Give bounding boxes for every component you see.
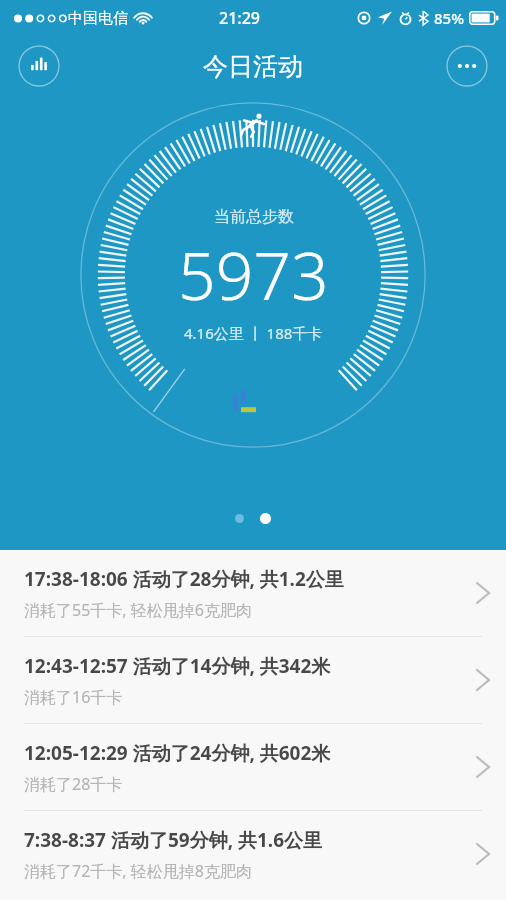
staticText: 12:43-12:57 活动了14分钟, 共342米: [24, 653, 331, 679]
staticText: 消耗了28千卡: [24, 773, 123, 795]
staticText: 5973: [178, 229, 329, 319]
button[interactable]: 7:38-8:37 活动了59分钟, 共1.6公里: [0, 811, 506, 897]
button[interactable]: 17:38-18:06 活动了28分钟, 共1.2公里: [0, 550, 506, 636]
staticText: 21:29: [219, 7, 260, 29]
button[interactable]: Statistics: [18, 45, 60, 87]
staticText: 中国电信: [68, 9, 128, 28]
button[interactable]: 12:05-12:29 活动了24分钟, 共602米: [0, 724, 506, 810]
staticText: 85%: [434, 8, 464, 28]
staticText: 消耗了16千卡: [24, 686, 123, 708]
staticText: 4.16公里 丨 188千卡: [184, 323, 323, 343]
staticText: 17:38-18:06 活动了28分钟, 共1.2公里: [24, 566, 344, 592]
staticText: 12:05-12:29 活动了24分钟, 共602米: [24, 740, 331, 766]
button[interactable]: 12:43-12:57 活动了14分钟, 共342米: [0, 637, 506, 723]
staticText: 今日活动: [203, 51, 303, 82]
staticText: 7:38-8:37 活动了59分钟, 共1.6公里: [24, 827, 323, 853]
staticText: 消耗了72千卡, 轻松甩掉8克肥肉: [24, 860, 252, 882]
button[interactable]: More options: [446, 45, 488, 87]
staticText: 当前总步数: [214, 207, 294, 227]
staticText: 消耗了55千卡, 轻松甩掉6克肥肉: [24, 599, 252, 621]
